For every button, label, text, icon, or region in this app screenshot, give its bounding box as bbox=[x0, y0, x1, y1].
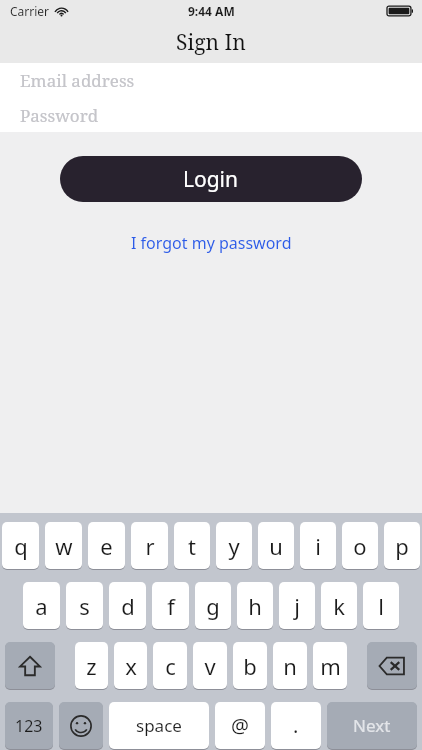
staticText: l bbox=[378, 591, 384, 621]
staticText: a bbox=[35, 591, 48, 621]
staticText: f bbox=[167, 591, 175, 621]
button[interactable]: q bbox=[2, 522, 39, 569]
staticText: d bbox=[121, 591, 135, 621]
button[interactable]: c bbox=[153, 642, 187, 689]
staticText: w bbox=[55, 531, 73, 561]
staticText: o bbox=[353, 531, 367, 561]
staticText: Login bbox=[183, 165, 239, 194]
staticText: j bbox=[294, 591, 300, 621]
button[interactable]: o bbox=[342, 522, 378, 569]
staticText: v bbox=[204, 651, 216, 681]
staticText: Sign In bbox=[176, 28, 246, 57]
button[interactable]: I forgot my password bbox=[123, 228, 300, 258]
button[interactable]: d bbox=[109, 582, 146, 629]
button[interactable]: k bbox=[321, 582, 357, 629]
staticText: g bbox=[206, 591, 220, 621]
staticText: r bbox=[145, 531, 155, 561]
button[interactable]: 123 bbox=[5, 702, 53, 749]
button[interactable]: r bbox=[131, 522, 168, 569]
staticText: x bbox=[125, 651, 137, 681]
button[interactable]: s bbox=[66, 582, 103, 629]
button[interactable]: a bbox=[23, 582, 60, 629]
staticText: Email address bbox=[20, 69, 135, 92]
staticText: p bbox=[395, 531, 409, 561]
button[interactable]: i bbox=[300, 522, 336, 569]
button[interactable]: Emoji bbox=[59, 702, 103, 749]
button[interactable]: e bbox=[88, 522, 125, 569]
button[interactable]: . bbox=[271, 702, 321, 749]
staticText: 123 bbox=[15, 715, 43, 737]
staticText: q bbox=[14, 531, 28, 561]
button[interactable]: g bbox=[195, 582, 231, 629]
staticText: I forgot my password bbox=[131, 232, 292, 254]
staticText: space bbox=[136, 714, 182, 737]
staticText: 9:44 AM bbox=[188, 3, 235, 19]
staticText: k bbox=[333, 591, 345, 621]
staticText: b bbox=[243, 651, 257, 681]
button[interactable]: Login bbox=[60, 156, 362, 202]
staticText: z bbox=[86, 651, 97, 681]
staticText: n bbox=[283, 651, 297, 681]
button[interactable]: x bbox=[114, 642, 147, 689]
staticText: Password bbox=[20, 104, 99, 127]
button[interactable]: j bbox=[279, 582, 315, 629]
button[interactable]: @ bbox=[215, 702, 265, 749]
button[interactable]: n bbox=[273, 642, 307, 689]
button[interactable]: t bbox=[174, 522, 210, 569]
button[interactable]: u bbox=[258, 522, 294, 569]
staticText: @ bbox=[231, 712, 249, 739]
button[interactable]: Password bbox=[0, 98, 422, 132]
button[interactable]: space bbox=[109, 702, 209, 749]
button[interactable]: z bbox=[75, 642, 108, 689]
staticText: e bbox=[100, 531, 113, 561]
staticText: m bbox=[320, 651, 341, 681]
staticText: Carrier bbox=[10, 3, 50, 19]
button[interactable]: m bbox=[313, 642, 347, 689]
button[interactable]: b bbox=[233, 642, 267, 689]
button[interactable]: p bbox=[384, 522, 420, 569]
button[interactable]: h bbox=[237, 582, 273, 629]
staticText: . bbox=[293, 712, 299, 739]
staticText: i bbox=[315, 531, 321, 561]
staticText: c bbox=[165, 651, 176, 681]
button[interactable]: Backspace bbox=[367, 642, 417, 689]
staticText: t bbox=[188, 531, 196, 561]
button[interactable]: w bbox=[45, 522, 82, 569]
staticText: Next bbox=[353, 714, 391, 737]
button[interactable]: Email address bbox=[0, 63, 422, 98]
button[interactable]: v bbox=[193, 642, 227, 689]
button[interactable]: Next bbox=[327, 702, 417, 749]
button[interactable]: y bbox=[216, 522, 252, 569]
staticText: h bbox=[248, 591, 262, 621]
staticText: s bbox=[79, 591, 90, 621]
staticText: u bbox=[269, 531, 283, 561]
staticText: y bbox=[228, 531, 240, 561]
button[interactable]: l bbox=[363, 582, 399, 629]
button[interactable]: Shift bbox=[5, 642, 55, 689]
button[interactable]: f bbox=[152, 582, 189, 629]
